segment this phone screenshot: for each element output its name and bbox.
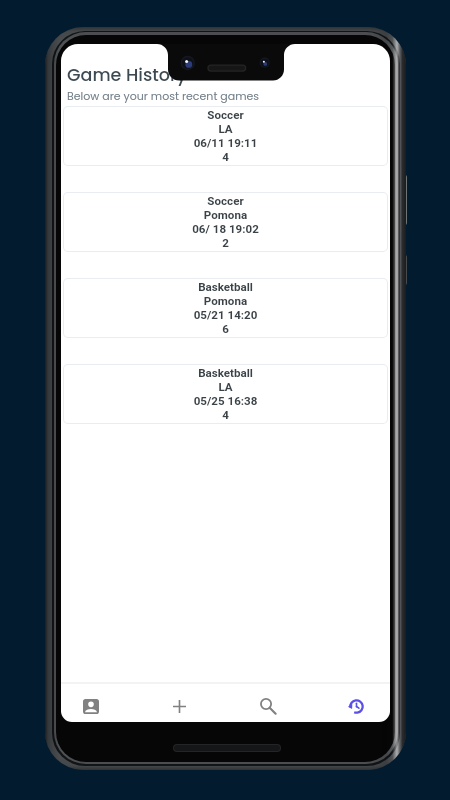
- button[interactable]: Search: [250, 690, 286, 722]
- button[interactable]: Account: [73, 690, 109, 722]
- staticText: Basketball Pomona 05/21 14:20 6: [64, 280, 387, 336]
- button[interactable]: Soccer Pomona 06/ 18 19:02 2: [63, 192, 388, 252]
- button[interactable]: Soccer LA 06/11 19:11 4: [63, 106, 388, 166]
- button[interactable]: Basketball LA 05/25 16:38 4: [63, 364, 388, 424]
- button[interactable]: Add game: [161, 690, 197, 722]
- staticText: Soccer Pomona 06/ 18 19:02 2: [64, 194, 387, 250]
- staticText: Game History: [67, 63, 187, 88]
- staticText: Below are your most recent games: [67, 88, 260, 103]
- button[interactable]: History: [338, 690, 374, 722]
- staticText: Basketball LA 05/25 16:38 4: [64, 366, 387, 422]
- button[interactable]: Basketball Pomona 05/21 14:20 6: [63, 278, 388, 338]
- staticText: Soccer LA 06/11 19:11 4: [64, 108, 387, 164]
